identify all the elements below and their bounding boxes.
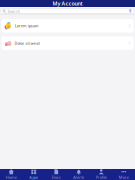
button[interactable]: More [112, 169, 135, 180]
staticText: Profile [96, 175, 107, 180]
staticText: Dolor sit amet [15, 40, 40, 46]
staticText: Home [6, 175, 17, 180]
button[interactable]: Profile [90, 169, 112, 180]
staticText: More [119, 175, 129, 180]
button[interactable]: Lorem ipsum [1, 19, 134, 33]
staticText: Alerts [73, 175, 84, 180]
button[interactable]: Dolor sit amet [1, 36, 134, 50]
staticText: Search [7, 8, 19, 14]
button[interactable]: Alerts [67, 169, 90, 180]
staticText: Apps [29, 175, 38, 180]
button[interactable]: Docs [45, 169, 67, 180]
staticText: Lorem ipsum [15, 23, 39, 28]
button[interactable]: Apps [22, 169, 45, 180]
staticText: Docs [52, 175, 61, 180]
staticText: My Account [52, 0, 82, 7]
button[interactable]: Home [0, 169, 22, 180]
